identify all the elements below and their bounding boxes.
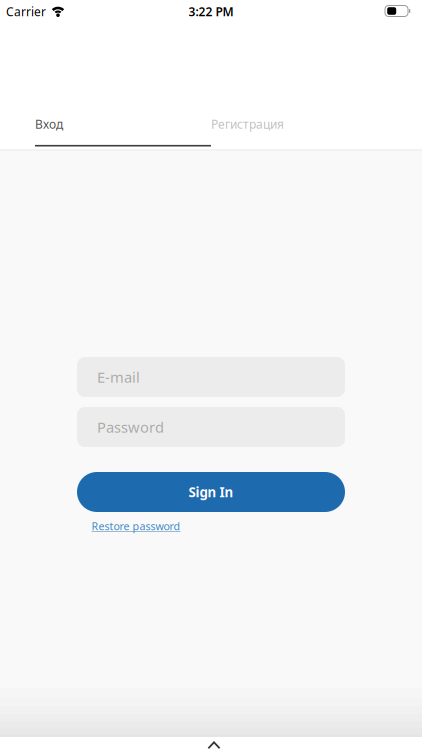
button[interactable]	[207, 740, 220, 749]
button[interactable]: Password	[77, 407, 345, 447]
button[interactable]: Регистрация	[211, 109, 387, 139]
staticText: Password	[97, 417, 164, 437]
button[interactable]: Вход	[35, 109, 211, 139]
button[interactable]: Sign In	[77, 472, 345, 512]
staticText: E-mail	[97, 367, 140, 387]
button[interactable]: Restore password	[91, 519, 180, 533]
button[interactable]: E-mail	[77, 357, 345, 397]
staticText: Регистрация	[211, 116, 284, 132]
staticText: 3:22 PM	[188, 3, 233, 19]
staticText: Вход	[35, 116, 63, 132]
staticText: Carrier	[6, 3, 46, 19]
staticText: Restore password	[91, 519, 180, 533]
staticText: Sign In	[188, 483, 233, 501]
